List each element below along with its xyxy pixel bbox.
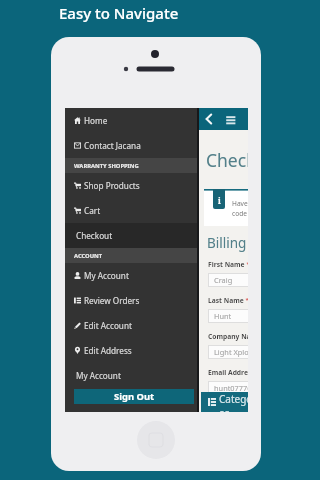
staticText: hunt07776@gmail.com <box>214 383 248 393</box>
staticText: Last Name <box>208 296 244 305</box>
button[interactable]: Edit Account <box>65 313 199 338</box>
staticText: i <box>218 195 221 206</box>
staticText: Review Orders <box>84 295 140 306</box>
staticText: First Name <box>208 260 245 269</box>
staticText: Billing Details <box>207 234 248 252</box>
staticText: Craig <box>214 275 233 285</box>
button[interactable]: Edit Address <box>65 338 199 363</box>
button[interactable]: Back <box>201 111 217 127</box>
staticText: Shop Products <box>84 180 140 191</box>
staticText: Hunt <box>214 311 232 321</box>
staticText: Checkout <box>76 230 113 241</box>
staticText: Sign Out <box>114 390 155 403</box>
staticText: WARRANTY SHOPPING <box>74 162 139 170</box>
staticText: Categories <box>219 392 248 412</box>
button[interactable]: Categories <box>201 392 248 412</box>
staticText: ACCOUNT <box>74 252 103 260</box>
button[interactable]: Cart <box>65 198 199 223</box>
staticText: * <box>245 260 248 268</box>
staticText: code <box>232 209 247 218</box>
button[interactable]: Menu <box>223 111 239 127</box>
staticText: Edit Account <box>84 320 132 331</box>
staticText: Cart <box>84 205 101 216</box>
staticText: Contact Jacana <box>84 140 141 151</box>
button[interactable]: Review Orders <box>65 288 199 313</box>
button[interactable]: Home <box>65 108 199 133</box>
staticText: My Account <box>84 270 129 281</box>
staticText: Light Xplosion <box>214 347 248 357</box>
staticText: Home <box>84 115 108 126</box>
staticText: Have a coupon? Click here to enter your <box>232 199 248 208</box>
staticText: Checkout <box>206 148 248 172</box>
staticText: My Account <box>76 370 121 381</box>
button[interactable]: Sign Out <box>74 389 194 404</box>
button[interactable]: Shop Products <box>65 173 199 198</box>
button[interactable]: Checkout <box>65 223 199 248</box>
staticText: Edit Address <box>84 345 132 356</box>
button[interactable]: Contact Jacana <box>65 133 199 158</box>
button[interactable]: My Account <box>65 263 199 288</box>
staticText: Easy to Navigate <box>59 3 179 23</box>
staticText: Email Address <box>208 368 248 377</box>
staticText: Company Name <box>208 332 248 341</box>
staticText: * <box>244 296 248 304</box>
button[interactable]: My Account <box>65 363 199 388</box>
